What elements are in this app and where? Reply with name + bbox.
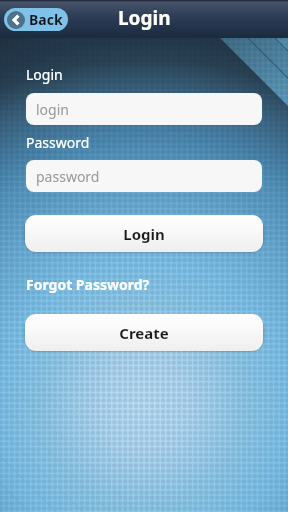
staticText: Password — [26, 133, 90, 152]
staticText: Login — [26, 65, 63, 84]
staticText: Back — [29, 10, 63, 29]
button[interactable]: login — [26, 93, 262, 125]
button[interactable]: Create — [25, 314, 263, 351]
staticText: login — [36, 100, 69, 119]
button[interactable]: password — [26, 160, 262, 192]
staticText: password — [36, 167, 100, 186]
staticText: Login — [118, 5, 171, 31]
button[interactable]: Back — [4, 8, 68, 31]
button[interactable]: Login — [25, 215, 263, 252]
staticText: Login — [123, 224, 165, 244]
staticText: Create — [119, 323, 169, 343]
button[interactable]: Forgot Password? — [26, 275, 150, 294]
